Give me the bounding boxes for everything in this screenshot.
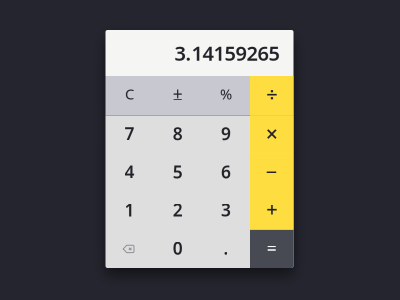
staticText: = [267, 236, 277, 259]
button[interactable]: 6 [202, 154, 250, 192]
staticText: 1 [125, 198, 135, 221]
button[interactable]: Multiply [250, 115, 293, 154]
staticText: . [223, 236, 228, 259]
button[interactable]: 1 [105, 192, 154, 230]
staticText: + [266, 195, 277, 222]
button[interactable]: 5 [154, 154, 202, 192]
button[interactable]: 3 [202, 192, 250, 230]
button[interactable]: Clear [105, 76, 154, 115]
button[interactable]: . [202, 230, 250, 268]
staticText: 5 [173, 160, 183, 183]
staticText: 2 [173, 198, 183, 221]
staticText: 9 [221, 122, 231, 145]
button[interactable]: Plus minus [154, 76, 202, 115]
staticText: 3.14159265 [174, 40, 279, 66]
button[interactable]: Delete [105, 230, 154, 268]
staticText: % [220, 84, 232, 103]
button[interactable]: 2 [154, 192, 202, 230]
staticText: 8 [173, 122, 183, 145]
button[interactable]: Minus [250, 154, 293, 192]
staticText: 0 [173, 236, 183, 259]
staticText: 4 [125, 160, 135, 183]
button[interactable]: 4 [105, 154, 154, 192]
button[interactable]: 8 [154, 115, 202, 154]
staticText: ÷ [266, 80, 277, 107]
button[interactable]: 7 [105, 115, 154, 154]
button[interactable]: 9 [202, 115, 250, 154]
staticText: 7 [125, 122, 135, 145]
button[interactable]: Plus [250, 192, 293, 230]
staticText: 6 [221, 160, 231, 183]
staticText: 3 [221, 198, 231, 221]
staticText: ± [173, 82, 183, 105]
staticText: − [266, 158, 278, 185]
button[interactable]: Divide [250, 76, 293, 115]
button[interactable]: Equals [250, 230, 293, 268]
staticText: × [266, 119, 278, 148]
staticText: C [125, 84, 134, 103]
button[interactable]: 0 [154, 230, 202, 268]
button[interactable]: Percent [202, 76, 250, 115]
